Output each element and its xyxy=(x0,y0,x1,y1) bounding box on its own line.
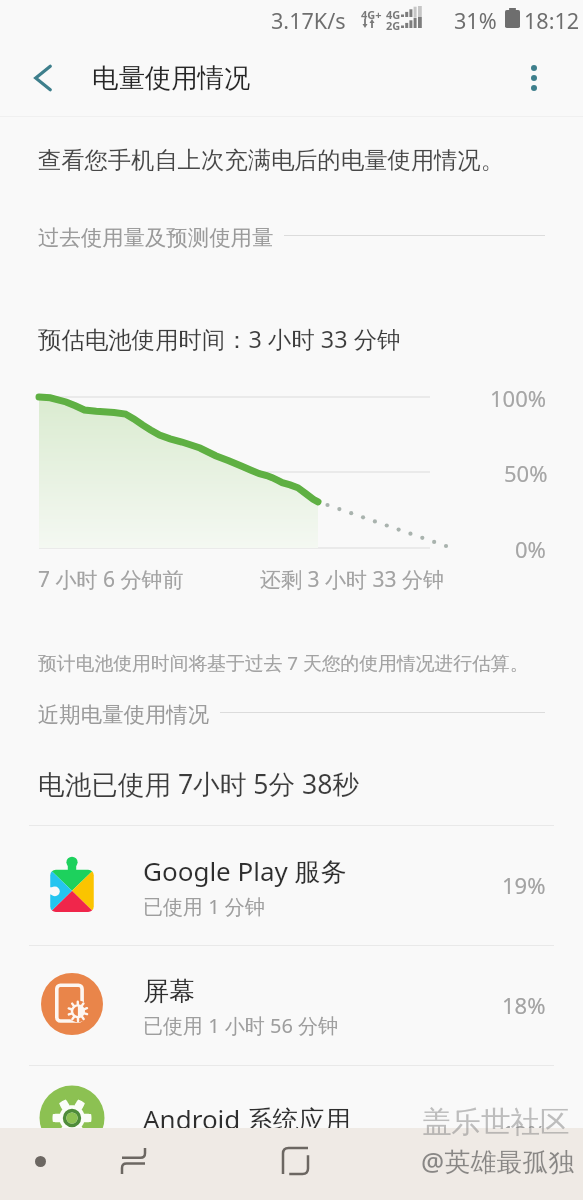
button[interactable]: Back xyxy=(15,50,71,106)
staticText: 0% xyxy=(515,534,546,564)
staticText: 19% xyxy=(502,870,546,900)
staticText: 50% xyxy=(504,458,548,488)
staticText: 100% xyxy=(490,383,547,413)
staticText: 预计电池使用时间将基于过去 7 天您的使用情况进行估算。 xyxy=(38,650,529,676)
staticText: Google Play 服务 xyxy=(143,853,347,889)
staticText: Android 系统应用 xyxy=(143,1101,352,1137)
button[interactable]: 屏幕 xyxy=(0,946,583,1065)
staticText: 3.17K/s xyxy=(271,6,346,35)
button[interactable]: Back xyxy=(105,1133,161,1189)
button[interactable]: More options xyxy=(506,50,562,106)
staticText: 电池已使用 7小时 5分 38秒 xyxy=(38,766,359,802)
staticText: @英雄最孤独 xyxy=(421,1143,575,1178)
staticText: 7 小时 6 分钟前 xyxy=(38,565,184,594)
staticText: 31% xyxy=(454,6,497,35)
staticText: 过去使用量及预测使用量 xyxy=(38,224,274,251)
staticText: 近期电量使用情况 xyxy=(38,701,210,728)
staticText: 已使用 1 小时 56 分钟 xyxy=(143,1012,339,1039)
staticText: 电量使用情况 xyxy=(92,62,251,95)
staticText: 已使用 2 小时 12 分钟 xyxy=(143,1141,339,1168)
staticText: 盖乐世社区 xyxy=(422,1104,570,1141)
staticText: 还剩 3 小时 33 分钟 xyxy=(260,565,444,594)
button[interactable]: Android 系统应用 xyxy=(0,1066,583,1185)
staticText: 18% xyxy=(502,990,546,1020)
staticText: 4G xyxy=(386,7,401,22)
staticText: 屏幕 xyxy=(143,975,195,1008)
button[interactable]: Home xyxy=(267,1133,323,1189)
staticText: 查看您手机自上次充满电后的电量使用情况。 xyxy=(38,146,504,175)
staticText: 已使用 1 分钟 xyxy=(143,893,265,920)
staticText: 4G+ xyxy=(361,7,382,22)
button[interactable]: Google Play 服务 xyxy=(0,826,583,945)
staticText: 18:12 xyxy=(524,6,580,35)
staticText: 预估电池使用时间：3 小时 33 分钟 xyxy=(38,323,401,355)
staticText: 2G xyxy=(386,18,401,33)
staticText: 12% xyxy=(502,1118,546,1148)
button[interactable]: Recent apps xyxy=(12,1133,68,1189)
